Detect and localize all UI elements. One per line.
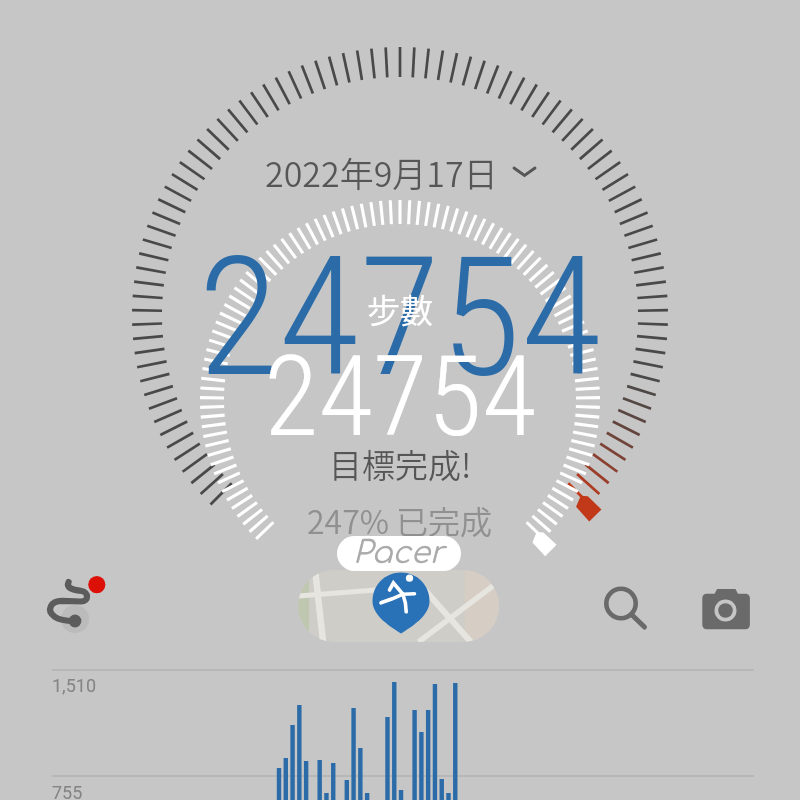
staticText: Pacer [353,536,445,571]
button[interactable]: Search [592,576,652,636]
staticText: 755 [52,782,83,800]
staticText: 2022年9月17日 [265,148,498,197]
button[interactable]: Routes [40,555,120,635]
staticText: 24754 [198,220,602,415]
button[interactable]: 2022年9月17日 [265,147,548,197]
button[interactable]: Camera [698,584,758,636]
staticText: 步數 [367,285,433,333]
staticText: 247% 已完成 [307,497,493,543]
staticText: 24754 [264,331,537,462]
staticText: 1,510 [52,675,97,696]
button[interactable]: Pacer map [298,570,499,642]
staticText: 目標完成! [329,440,472,488]
